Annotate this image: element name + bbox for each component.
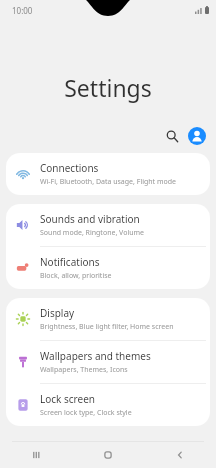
staticText: Sound mode, Ringtone, Volume xyxy=(40,228,145,238)
staticText: Settings xyxy=(64,72,152,103)
button[interactable]: Lock screen xyxy=(6,384,210,426)
staticText: 10:00 xyxy=(12,5,33,16)
staticText: Wallpapers, Themes, Icons xyxy=(40,365,128,375)
staticText: Wi-Fi, Bluetooth, Data usage, Flight mod… xyxy=(40,177,177,187)
staticText: Lock screen xyxy=(40,392,96,406)
staticText: Block, allow, prioritise xyxy=(40,271,112,281)
button[interactable]: Recents xyxy=(0,442,72,468)
button[interactable]: Back xyxy=(144,442,216,468)
button[interactable]: Search xyxy=(161,125,183,147)
staticText: Sounds and vibration xyxy=(40,212,140,226)
button[interactable]: Wallpapers and themes xyxy=(6,341,210,383)
button[interactable]: Display xyxy=(6,298,210,340)
staticText: Connections xyxy=(40,161,99,175)
button[interactable]: Home xyxy=(72,442,144,468)
staticText: Display xyxy=(40,306,75,320)
staticText: Wallpapers and themes xyxy=(40,349,151,363)
staticText: Brightness, Blue light filter, Home scre… xyxy=(40,322,174,332)
button[interactable]: Sounds and vibration xyxy=(6,204,210,246)
button[interactable]: Account xyxy=(186,125,208,147)
staticText: Notifications xyxy=(40,255,100,269)
button[interactable]: Notifications xyxy=(6,247,210,289)
staticText: Screen lock type, Clock style xyxy=(40,408,132,418)
button[interactable]: Connections xyxy=(6,153,210,195)
